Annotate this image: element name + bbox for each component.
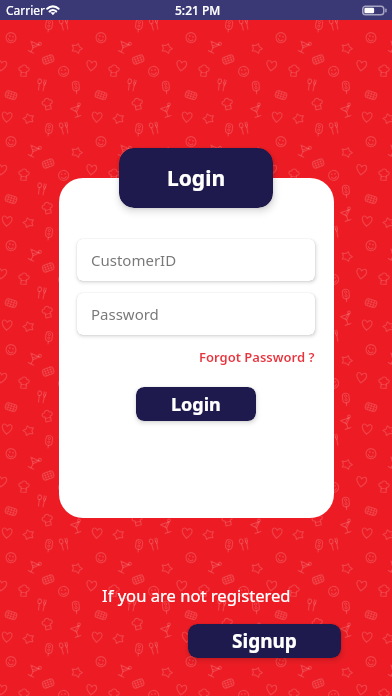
staticText: Password	[91, 304, 159, 324]
button[interactable]: CustomerID	[77, 239, 315, 281]
staticText: Forgot Password ?	[199, 348, 315, 366]
button[interactable]: Login	[119, 148, 273, 208]
staticText: Login	[171, 392, 221, 417]
button[interactable]: Password	[77, 293, 315, 335]
staticText: Carrier	[6, 2, 46, 18]
staticText: 5:21 PM	[175, 2, 221, 18]
staticText: If you are not registered	[102, 584, 291, 607]
other: Battery	[362, 5, 387, 16]
button[interactable]: Forgot Password ?	[199, 348, 315, 366]
button[interactable]: Login	[136, 387, 256, 421]
staticText: Login	[167, 164, 226, 193]
other: Wi-Fi	[46, 0, 62, 20]
button[interactable]: Signup	[188, 624, 341, 658]
staticText: CustomerID	[91, 250, 177, 270]
staticText: Signup	[232, 628, 297, 654]
